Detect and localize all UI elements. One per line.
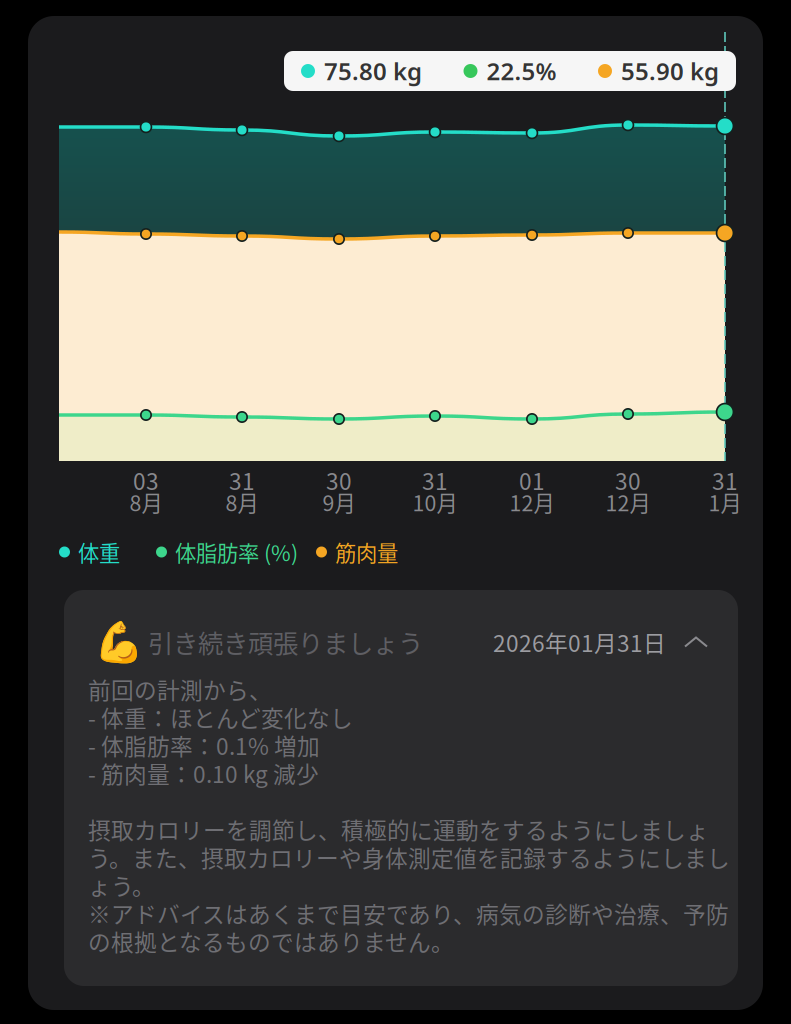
staticText: 摂取カロリーを調節し、積極的に運動をするようにしましょ: [88, 813, 709, 845]
staticText: 30: [326, 464, 352, 496]
button[interactable]: 💪: [64, 614, 738, 670]
staticText: 10月: [412, 487, 457, 517]
staticText: 01: [519, 464, 545, 496]
staticText: - 筋肉量：0.10 kg 減少: [88, 757, 319, 789]
staticText: 体脂肪率 (%): [175, 537, 298, 567]
staticText: 22.5%: [486, 55, 556, 87]
button[interactable]: 体重: [59, 537, 120, 567]
staticText: ※アドバイスはあくまで目安であり、病気の診断や治療、予防: [88, 897, 729, 929]
staticText: 31: [422, 464, 448, 496]
staticText: ょう。: [88, 869, 155, 901]
staticText: 31: [229, 464, 255, 496]
staticText: 1月: [708, 487, 741, 517]
staticText: う。また、摂取カロリーや身体測定値を記録するようにしまし: [88, 841, 730, 873]
staticText: の根拠となるものではありません。: [88, 925, 454, 957]
staticText: 2026年01月31日: [493, 626, 666, 658]
staticText: 8月: [129, 487, 162, 517]
button[interactable]: 75.80 kg: [284, 51, 736, 91]
staticText: 03: [133, 464, 159, 496]
staticText: 前回の計測から、: [88, 673, 272, 705]
staticText: 12月: [605, 487, 650, 517]
staticText: 引き続き頑張りましょう: [148, 624, 423, 660]
button[interactable]: 体脂肪率 (%): [156, 537, 298, 567]
staticText: 31: [712, 464, 738, 496]
staticText: - 体重：ほとんど変化なし: [88, 701, 353, 733]
staticText: 12月: [509, 487, 554, 517]
staticText: 75.80 kg: [324, 55, 422, 87]
staticText: 55.90 kg: [621, 55, 719, 87]
button[interactable]: 筋肉量: [316, 537, 398, 567]
staticText: 筋肉量: [335, 537, 398, 567]
staticText: 8月: [225, 487, 258, 517]
staticText: 💪: [94, 619, 144, 665]
staticText: 30: [615, 464, 641, 496]
staticText: 9月: [322, 487, 355, 517]
staticText: - 体脂肪率：0.1% 増加: [88, 729, 320, 761]
staticText: 体重: [78, 537, 120, 567]
